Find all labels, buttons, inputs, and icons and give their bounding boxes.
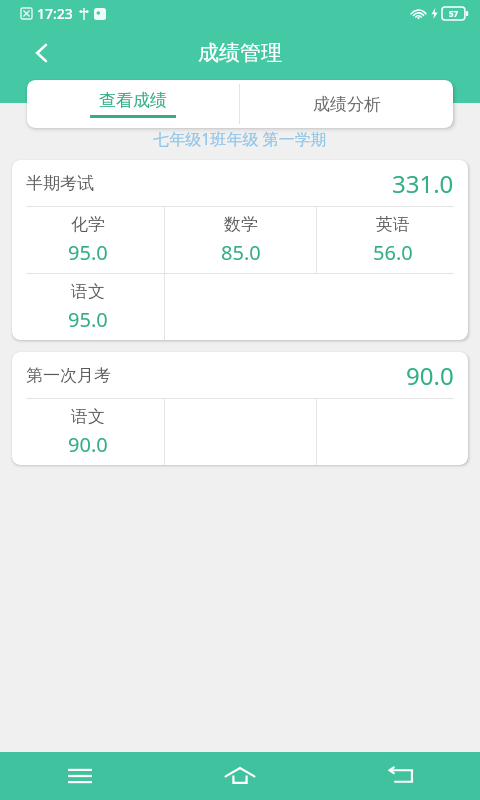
staticText: 七年级1班年级 第一学期 bbox=[0, 128, 480, 150]
staticText: 化学 bbox=[71, 214, 105, 235]
button[interactable]: 查看成绩 bbox=[27, 80, 239, 128]
staticText: 半期考试 bbox=[26, 173, 94, 194]
staticText: 成绩分析 bbox=[313, 94, 381, 115]
button[interactable]: 返回 bbox=[320, 752, 480, 800]
staticText: 85.0 bbox=[221, 239, 261, 266]
staticText: 语文 bbox=[71, 281, 105, 302]
button[interactable]: 返回 bbox=[18, 29, 66, 77]
staticText: 95.0 bbox=[68, 306, 108, 333]
staticText: 95.0 bbox=[68, 239, 108, 266]
button[interactable]: 第一次月考 bbox=[12, 352, 468, 465]
button[interactable]: 半期考试 bbox=[12, 160, 468, 340]
staticText: 57 bbox=[449, 8, 459, 19]
staticText: 17:23 bbox=[37, 4, 73, 23]
staticText: 56.0 bbox=[373, 239, 413, 266]
button[interactable]: 成绩分析 bbox=[240, 80, 453, 128]
staticText: 90.0 bbox=[68, 431, 108, 458]
staticText: 语文 bbox=[71, 406, 105, 427]
staticText: 数学 bbox=[224, 214, 258, 235]
staticText: 查看成绩 bbox=[99, 90, 167, 111]
staticText: 英语 bbox=[376, 214, 410, 235]
button[interactable]: 主页 bbox=[160, 752, 320, 800]
staticText: 90.0 bbox=[406, 359, 454, 392]
staticText: 第一次月考 bbox=[26, 365, 111, 386]
button[interactable]: 菜单 bbox=[0, 752, 160, 800]
staticText: 成绩管理 bbox=[198, 40, 282, 66]
staticText: 331.0 bbox=[392, 167, 454, 200]
